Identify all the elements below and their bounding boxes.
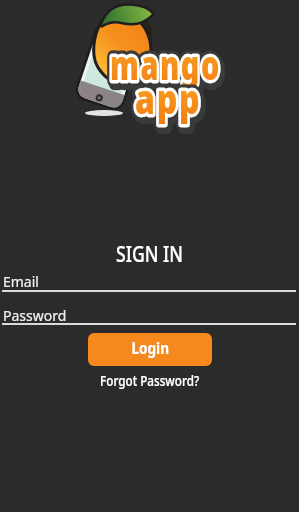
button[interactable]: Email bbox=[3, 272, 296, 289]
staticText: Password bbox=[3, 306, 67, 323]
button[interactable]: Login bbox=[88, 333, 212, 366]
staticText: mango bbox=[110, 37, 221, 91]
button[interactable]: Forgot Password? bbox=[0, 369, 299, 390]
staticText: app bbox=[137, 74, 203, 128]
staticText: app bbox=[135, 71, 201, 125]
staticText: Forgot Password? bbox=[100, 370, 200, 390]
staticText: app bbox=[135, 71, 201, 125]
staticText: app bbox=[135, 71, 201, 125]
staticText: mango bbox=[112, 40, 223, 94]
staticText: mango bbox=[110, 37, 221, 91]
button[interactable]: Password bbox=[3, 306, 296, 323]
staticText: Login bbox=[131, 337, 170, 359]
staticText: SIGN IN bbox=[24, 240, 275, 269]
staticText: mango bbox=[110, 37, 221, 91]
staticText: Email bbox=[3, 272, 39, 289]
